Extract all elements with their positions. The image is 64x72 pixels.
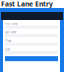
staticText: Fast Lane Entry — [1, 0, 53, 8]
staticText: Date — [5, 48, 11, 51]
button[interactable] — [3, 56, 60, 61]
staticText: Last name — [5, 30, 17, 34]
staticText: Plate — [5, 39, 12, 43]
staticText: First name — [5, 22, 18, 25]
